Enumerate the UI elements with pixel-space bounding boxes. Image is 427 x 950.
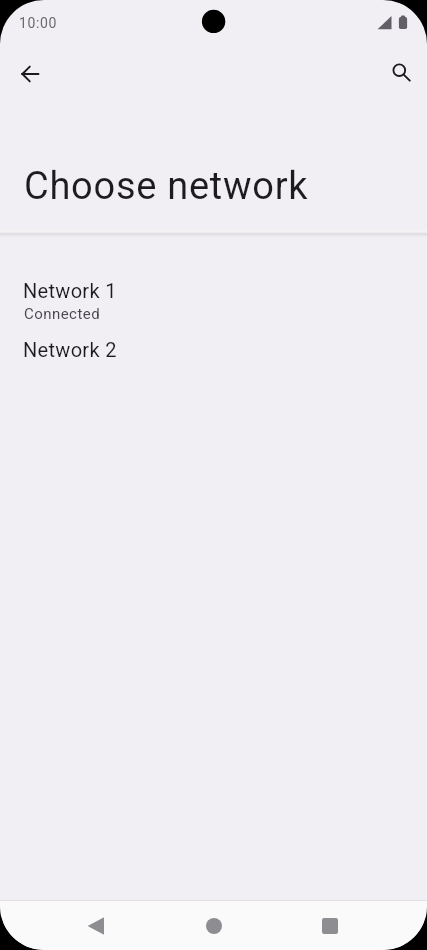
staticText: Network 2 — [23, 338, 117, 361]
button[interactable]: Network 2 — [0, 328, 427, 364]
staticText: Choose network — [24, 164, 309, 209]
staticText: 10:00 — [19, 15, 57, 31]
staticText: Connected — [24, 305, 101, 323]
button[interactable]: Navigate up — [6, 50, 54, 98]
button[interactable]: Back — [72, 901, 120, 950]
staticText: Network 1 — [23, 279, 117, 302]
button[interactable]: Search — [377, 48, 425, 96]
button[interactable]: Network 1 — [0, 265, 427, 328]
button[interactable]: Recent apps — [306, 901, 354, 950]
button[interactable]: Home — [190, 901, 238, 950]
